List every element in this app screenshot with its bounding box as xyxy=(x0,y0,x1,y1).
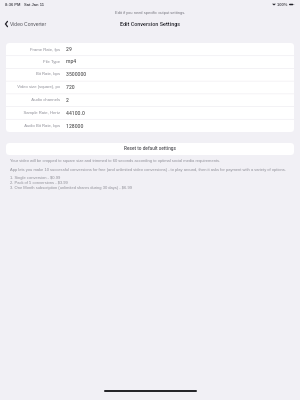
button[interactable]: Bit Rate, bps xyxy=(6,67,294,80)
staticText: Sat Jan 11 xyxy=(24,2,45,7)
staticText: 8:36 PM xyxy=(5,2,21,7)
button[interactable]: Reset to default settings xyxy=(6,143,294,155)
other: Home indicator xyxy=(104,390,197,392)
staticText: mp4 xyxy=(66,58,77,64)
staticText: Reset to default settings xyxy=(124,146,176,152)
staticText: Your video will be cropped to square siz… xyxy=(10,158,221,163)
staticText: 29 xyxy=(66,46,72,52)
staticText: 3500000 xyxy=(66,71,87,77)
staticText: 2 xyxy=(66,97,69,103)
button[interactable]: Audio channels xyxy=(6,93,294,106)
staticText: App lets you make 10 successful conversi… xyxy=(10,167,287,172)
button[interactable]: Video Converter xyxy=(5,21,47,27)
staticText: Audio channels xyxy=(6,97,60,102)
staticText: Video Converter xyxy=(10,21,47,27)
button[interactable]: Video size (square), px xyxy=(6,80,294,93)
staticText: 720 xyxy=(66,84,75,90)
staticText: 128000 xyxy=(66,123,84,129)
staticText: Frame Rate, fps xyxy=(6,47,60,52)
staticText: Audio Bit Rate, bps xyxy=(6,123,60,128)
button[interactable]: File Type xyxy=(6,55,294,67)
staticText: Edit Conversion Settings xyxy=(120,21,181,27)
button[interactable]: Sample Rate, Hertz xyxy=(6,106,294,119)
staticText: Edit if you need specific output setting… xyxy=(115,10,186,14)
staticText: File Type xyxy=(6,59,60,64)
staticText: Sample Rate, Hertz xyxy=(6,110,60,115)
staticText: Video size (square), px xyxy=(6,84,60,89)
button[interactable]: Frame Rate, fps xyxy=(6,43,294,55)
button[interactable]: Audio Bit Rate, bps xyxy=(6,119,294,132)
staticText: 1. Single conversion - $0.99 2. Pack of … xyxy=(10,175,132,190)
staticText: 100% xyxy=(277,2,288,7)
staticText: 44100.0 xyxy=(66,110,85,116)
staticText: Bit Rate, bps xyxy=(6,71,60,76)
